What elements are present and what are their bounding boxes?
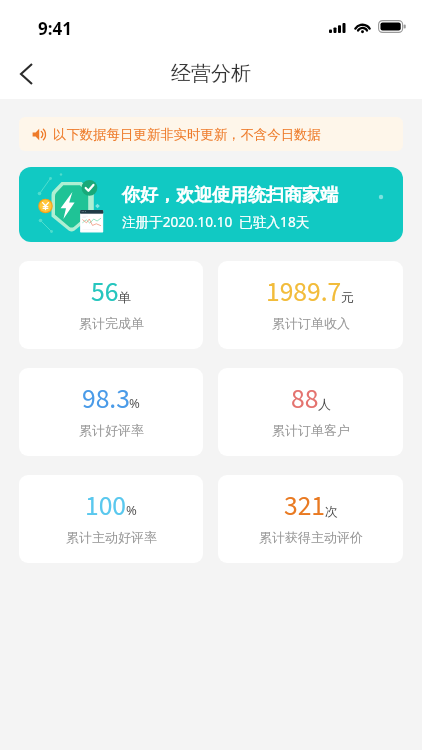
button[interactable]: 56: [19, 261, 203, 349]
staticText: 321: [284, 487, 326, 526]
staticText: 累计订单收入: [272, 315, 350, 331]
staticText: %: [129, 394, 140, 412]
button[interactable]: 以下数据每日更新非实时更新，不含今日数据: [19, 117, 403, 151]
staticText: 56: [91, 273, 119, 312]
staticText: 累计主动好评率: [66, 529, 157, 545]
staticText: 累计好评率: [79, 422, 144, 438]
staticText: 1989.7: [266, 273, 342, 312]
staticText: 累计获得主动评价: [259, 529, 363, 545]
staticText: 累计完成单: [79, 315, 144, 331]
staticText: 你好，欢迎使用统扫商家端: [122, 184, 338, 207]
staticText: 元: [341, 289, 354, 305]
staticText: 9:41: [38, 17, 72, 40]
button[interactable]: 100: [19, 475, 203, 563]
button[interactable]: Back: [3, 51, 49, 97]
staticText: %: [126, 501, 137, 519]
staticText: 经营分析: [171, 61, 251, 86]
staticText: 以下数据每日更新非实时更新，不含今日数据: [53, 126, 321, 143]
staticText: 100: [85, 487, 127, 526]
staticText: 累计订单客户: [272, 422, 350, 438]
button[interactable]: 321: [218, 475, 403, 563]
staticText: 单: [118, 289, 131, 305]
staticText: 88: [291, 380, 319, 419]
button[interactable]: 98.3: [19, 368, 203, 456]
button[interactable]: 1989.7: [218, 261, 403, 349]
staticText: 人: [318, 396, 331, 412]
button[interactable]: 你好，欢迎使用统扫商家端: [19, 167, 403, 242]
staticText: 98.3: [82, 380, 130, 419]
button[interactable]: 88: [218, 368, 403, 456]
staticText: 次: [325, 503, 338, 519]
staticText: 注册于2020.10.10 已驻入18天: [122, 212, 310, 231]
